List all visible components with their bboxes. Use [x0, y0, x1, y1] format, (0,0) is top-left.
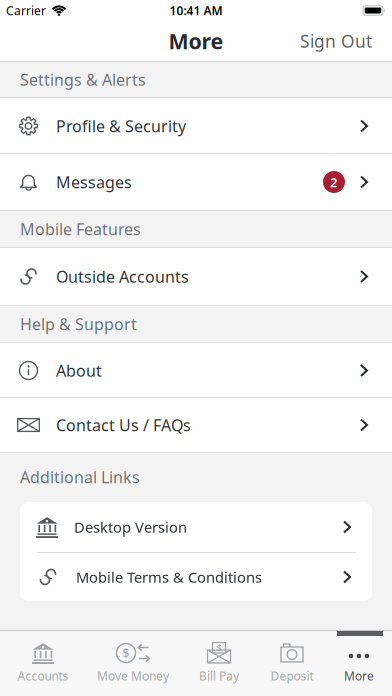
button[interactable]: Accounts	[0, 631, 86, 696]
staticText: Sign Out	[300, 29, 372, 52]
staticText: Contact Us / FAQs	[56, 414, 191, 436]
button[interactable]: Contact Us / FAQs	[0, 398, 392, 452]
button[interactable]: More	[326, 631, 392, 696]
staticText: Carrier	[6, 2, 46, 18]
staticText: More	[344, 668, 374, 684]
button[interactable]: Outside Accounts	[0, 248, 392, 305]
staticText: 10:41 AM	[169, 2, 222, 18]
button[interactable]: Sign Out	[300, 29, 372, 52]
staticText: Profile & Security	[56, 115, 186, 137]
button[interactable]: Messages	[0, 154, 392, 210]
button[interactable]: Deposit	[258, 631, 326, 696]
button[interactable]: Mobile Terms & Conditions	[20, 553, 372, 601]
button[interactable]: $	[86, 631, 180, 696]
staticText: More	[168, 27, 223, 55]
button[interactable]: $	[180, 631, 258, 696]
staticText: Help & Support	[20, 313, 137, 335]
button[interactable]: Profile & Security	[0, 98, 392, 154]
staticText: Desktop Version	[74, 517, 187, 537]
staticText: Accounts	[17, 668, 68, 684]
staticText: Mobile Terms & Conditions	[76, 567, 262, 587]
staticText: Messages	[56, 171, 132, 193]
button[interactable]: Desktop Version	[20, 502, 372, 552]
staticText: 2	[330, 173, 338, 191]
staticText: Bill Pay	[199, 668, 239, 684]
button[interactable]: About	[0, 343, 392, 398]
staticText: Move Money	[97, 668, 169, 684]
staticText: About	[56, 360, 102, 381]
staticText: $	[122, 645, 129, 661]
staticText: Settings & Alerts	[20, 69, 146, 90]
staticText: Outside Accounts	[56, 266, 189, 287]
staticText: $	[216, 641, 221, 654]
staticText: Mobile Features	[20, 218, 141, 240]
staticText: Deposit	[270, 668, 313, 684]
staticText: Additional Links	[20, 466, 140, 488]
